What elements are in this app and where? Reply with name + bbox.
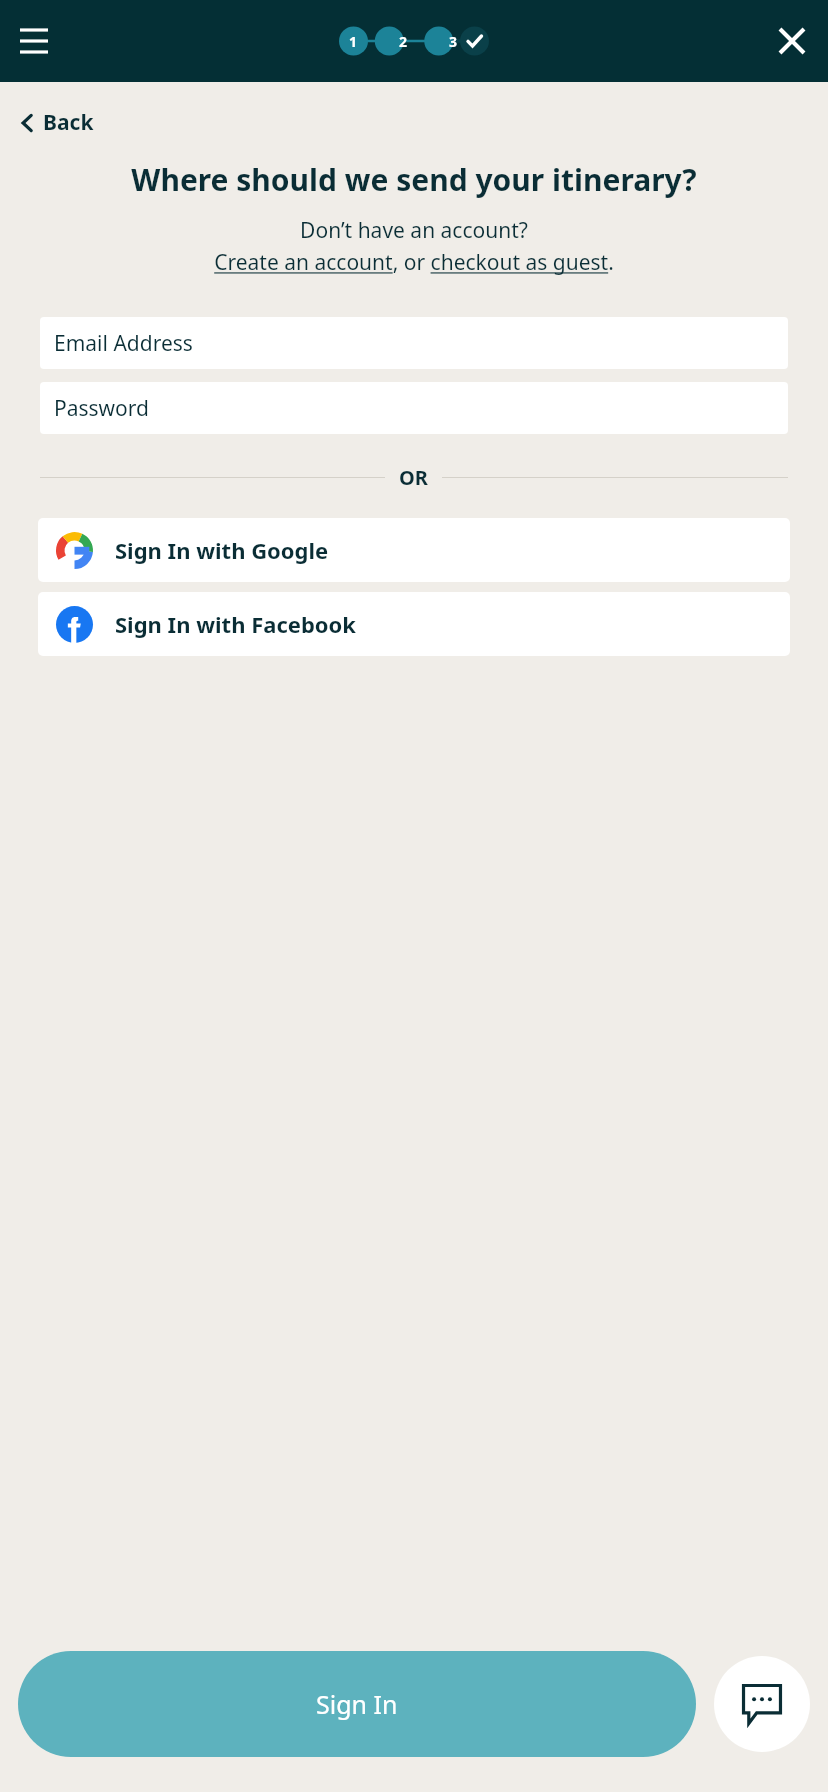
button[interactable]: Sign In bbox=[18, 1651, 696, 1757]
button[interactable]: Password bbox=[40, 382, 788, 434]
staticText: 3 bbox=[449, 32, 458, 51]
button[interactable]: Back bbox=[16, 102, 98, 143]
button[interactable]: Sign In with Google bbox=[38, 518, 790, 582]
staticText: Back bbox=[43, 108, 94, 137]
staticText: Don’t have an account? bbox=[0, 216, 828, 245]
staticText: OR bbox=[399, 464, 428, 491]
button[interactable]: Create an account, or checkout as guest. bbox=[214, 248, 614, 277]
staticText: Sign In with Facebook bbox=[115, 609, 356, 639]
button[interactable]: Chat support bbox=[714, 1656, 810, 1752]
button[interactable]: Close bbox=[768, 17, 816, 65]
staticText: 1 bbox=[349, 32, 358, 51]
staticText: 2 bbox=[399, 32, 408, 51]
staticText: Password bbox=[54, 394, 149, 423]
button[interactable]: Sign In with Facebook bbox=[38, 592, 790, 656]
staticText: Email Address bbox=[54, 329, 193, 358]
button[interactable]: Menu bbox=[10, 17, 58, 65]
staticText: Sign In with Google bbox=[115, 535, 329, 565]
staticText: Sign In bbox=[316, 1687, 398, 1721]
button[interactable]: Email Address bbox=[40, 317, 788, 369]
staticText: Where should we send your itinerary? bbox=[12, 159, 816, 200]
